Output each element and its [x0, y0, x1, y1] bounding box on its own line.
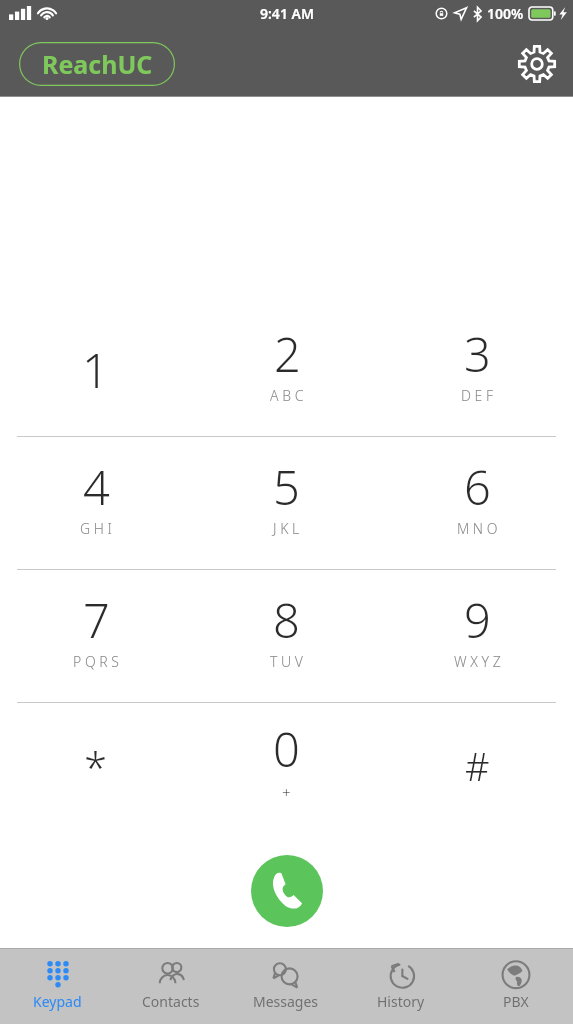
button[interactable]: 0: [191, 703, 382, 829]
button[interactable]: Keypad: [0, 949, 114, 1024]
button[interactable]: Contacts: [114, 949, 228, 1024]
staticText: G H I: [80, 519, 112, 538]
staticText: M N O: [457, 519, 498, 538]
button[interactable]: ReachUC: [19, 42, 175, 86]
staticText: J K L: [273, 519, 300, 538]
button[interactable]: 6: [382, 437, 573, 569]
staticText: 3: [464, 322, 491, 386]
button[interactable]: 1: [0, 304, 191, 436]
staticText: 9:41 AM: [260, 4, 314, 23]
staticText: D E F: [461, 386, 494, 405]
staticText: 1: [82, 338, 109, 402]
staticText: 100%: [487, 4, 524, 23]
staticText: 6: [464, 455, 491, 519]
staticText: 2: [274, 322, 301, 386]
staticText: T U V: [270, 652, 303, 671]
staticText: 9: [464, 588, 491, 652]
staticText: Keypad: [33, 992, 82, 1011]
staticText: 8: [273, 588, 300, 652]
staticText: #: [465, 740, 490, 792]
staticText: History: [377, 992, 425, 1011]
staticText: 5: [273, 455, 300, 519]
button[interactable]: 2: [191, 304, 382, 436]
button[interactable]: PBX: [458, 949, 573, 1024]
button[interactable]: History: [343, 949, 458, 1024]
staticText: PBX: [503, 992, 529, 1011]
staticText: 7: [83, 588, 110, 652]
button[interactable]: *: [0, 703, 191, 829]
staticText: Messages: [253, 992, 319, 1011]
staticText: +: [282, 782, 291, 802]
staticText: ReachUC: [42, 47, 153, 81]
staticText: P Q R S: [73, 652, 119, 671]
staticText: *: [84, 738, 108, 795]
button[interactable]: Settings: [513, 40, 561, 88]
button[interactable]: Messages: [228, 949, 343, 1024]
staticText: Contacts: [142, 992, 200, 1011]
button[interactable]: 5: [191, 437, 382, 569]
button[interactable]: 8: [191, 570, 382, 702]
button[interactable]: 9: [382, 570, 573, 702]
button[interactable]: 7: [0, 570, 191, 702]
button[interactable]: 4: [0, 437, 191, 569]
staticText: 0: [273, 717, 300, 781]
button[interactable]: Call: [251, 855, 323, 927]
staticText: A B C: [270, 386, 304, 405]
staticText: W X Y Z: [454, 652, 501, 671]
button[interactable]: #: [382, 703, 573, 829]
staticText: 4: [83, 455, 110, 519]
button[interactable]: 3: [382, 304, 573, 436]
